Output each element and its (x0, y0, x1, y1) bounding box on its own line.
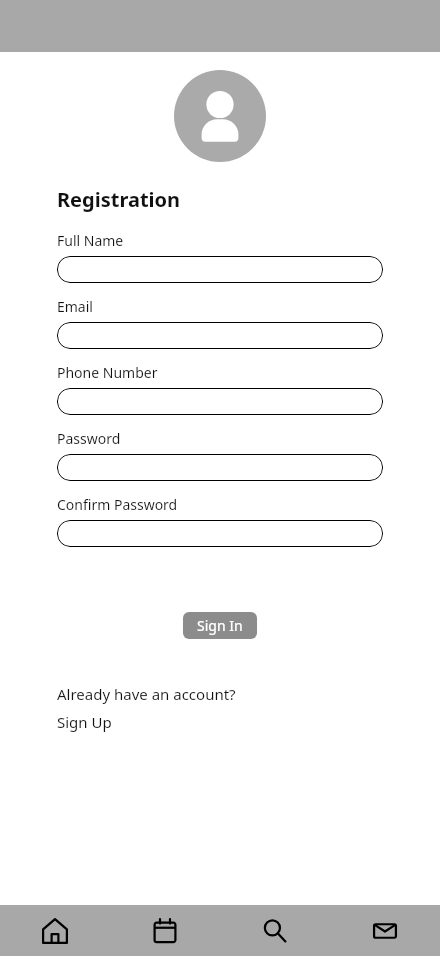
button[interactable]: Profile photo (174, 70, 266, 162)
button[interactable] (57, 256, 383, 283)
staticText: Registration (57, 186, 181, 213)
staticText: Phone Number (57, 363, 158, 382)
button[interactable] (57, 520, 383, 547)
staticText: Already have an account? (57, 684, 236, 704)
button[interactable] (57, 322, 383, 349)
button[interactable] (57, 454, 383, 481)
button[interactable]: Home (0, 905, 110, 956)
button[interactable] (57, 388, 383, 415)
button[interactable]: Sign Up (57, 712, 112, 732)
button[interactable]: Search (220, 905, 330, 956)
staticText: Full Name (57, 231, 124, 250)
button[interactable]: Mail (330, 905, 440, 956)
staticText: Sign In (197, 616, 243, 635)
staticText: Confirm Password (57, 495, 178, 514)
staticText: Email (57, 297, 93, 316)
button[interactable]: Calendar (110, 905, 220, 956)
staticText: Password (57, 429, 121, 448)
button[interactable]: Sign In (183, 612, 257, 639)
